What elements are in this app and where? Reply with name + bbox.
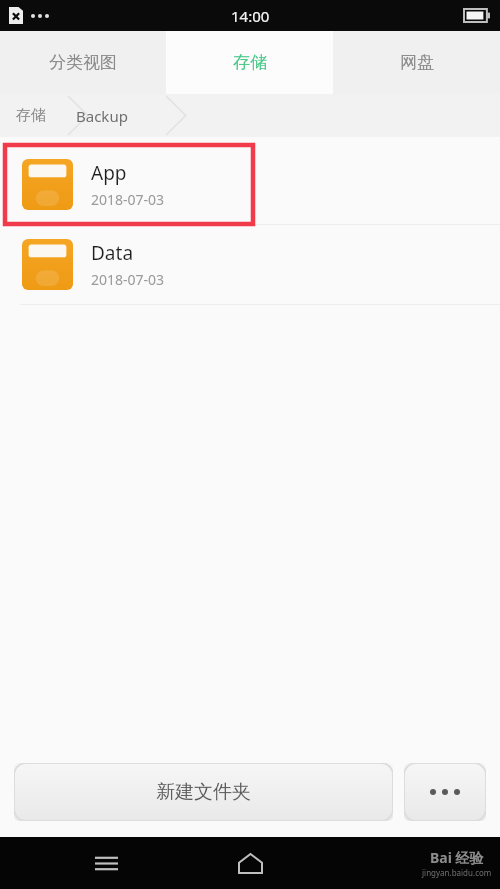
button[interactable]: Data <box>0 225 500 304</box>
staticText: Bai 经验 <box>430 848 484 867</box>
staticText: 2018-07-03 <box>91 270 165 289</box>
staticText: 14:00 <box>231 6 270 26</box>
button[interactable]: Menu <box>86 843 126 883</box>
staticText: jingyan.baidu.com <box>422 867 492 878</box>
button[interactable]: 存储 <box>166 31 333 94</box>
staticText: 2018-07-03 <box>91 190 165 209</box>
staticText: 新建文件夹 <box>156 780 251 804</box>
button[interactable]: App <box>0 145 500 224</box>
staticText: Data <box>91 240 134 266</box>
button[interactable]: Backup <box>76 106 128 126</box>
button[interactable]: 存储 <box>16 106 46 125</box>
button[interactable]: Home <box>230 843 270 883</box>
staticText: 网盘 <box>400 52 434 73</box>
staticText: App <box>91 160 127 186</box>
staticText: 存储 <box>233 52 267 73</box>
button[interactable]: More options <box>404 763 486 821</box>
button[interactable]: 分类视图 <box>0 31 166 94</box>
button[interactable]: 网盘 <box>333 31 500 94</box>
staticText: 存储 <box>16 106 46 125</box>
staticText: 分类视图 <box>49 52 117 73</box>
button[interactable]: 新建文件夹 <box>14 763 393 821</box>
staticText: Backup <box>76 106 128 126</box>
